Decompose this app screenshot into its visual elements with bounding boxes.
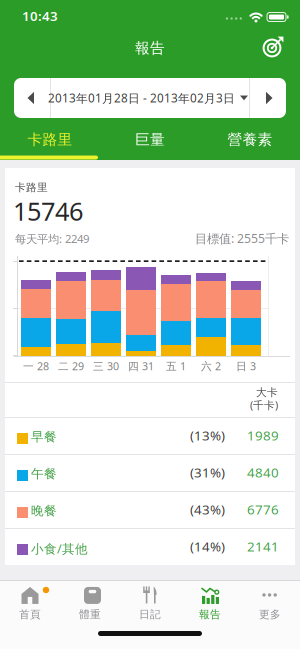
- staticText: 首頁: [19, 608, 41, 621]
- staticText: 日記: [139, 608, 161, 621]
- staticText: 1989: [247, 426, 279, 444]
- staticText: (14%): [190, 537, 225, 555]
- staticText: 卡路里: [15, 181, 48, 194]
- button[interactable]: 目標: [258, 32, 288, 62]
- staticText: 六 2: [201, 359, 221, 373]
- staticText: 報告: [199, 608, 221, 621]
- staticText: (43%): [190, 500, 225, 518]
- staticText: 更多: [259, 608, 281, 621]
- staticText: 10:43: [22, 7, 58, 25]
- button[interactable]: 報告: [182, 585, 238, 622]
- button[interactable]: 巨量: [100, 123, 200, 156]
- staticText: 體重: [79, 608, 101, 621]
- staticText: 2013年01月28日 - 2013年02月3日: [48, 90, 235, 106]
- staticText: 一 28: [23, 359, 49, 373]
- staticText: (13%): [190, 426, 225, 444]
- staticText: 卡路里: [27, 130, 72, 148]
- staticText: 15746: [13, 194, 83, 228]
- button[interactable]: 上一週: [14, 84, 50, 112]
- staticText: 五 1: [166, 359, 186, 373]
- staticText: 三 30: [93, 359, 119, 373]
- button[interactable]: 2013年01月28日 - 2013年02月3日: [42, 78, 254, 118]
- staticText: 大卡: [256, 386, 278, 399]
- staticText: 晚餐: [31, 503, 57, 519]
- staticText: 4840: [247, 463, 279, 481]
- staticText: 日 3: [236, 359, 256, 373]
- staticText: 巨量: [135, 130, 165, 148]
- button[interactable]: 日記: [122, 585, 178, 622]
- staticText: 每天平均: 2249: [15, 231, 89, 246]
- button[interactable]: 更多: [242, 585, 298, 622]
- staticText: 四 31: [128, 359, 154, 373]
- staticText: (31%): [190, 463, 225, 481]
- button[interactable]: 卡路里: [0, 123, 100, 156]
- staticText: 二 29: [58, 359, 84, 373]
- staticText: (千卡): [250, 398, 278, 412]
- button[interactable]: 營養素: [200, 123, 300, 156]
- staticText: 目標值: 2555千卡: [195, 230, 289, 247]
- staticText: 6776: [247, 500, 279, 518]
- staticText: 早餐: [31, 429, 57, 445]
- staticText: 小食/其他: [31, 540, 88, 557]
- staticText: 報告: [135, 39, 165, 57]
- staticText: 午餐: [31, 466, 57, 482]
- button[interactable]: 下一週: [250, 84, 286, 112]
- staticText: 2141: [247, 537, 279, 555]
- button[interactable]: 體重: [62, 585, 118, 622]
- staticText: 營養素: [227, 130, 272, 148]
- button[interactable]: 首頁: [2, 585, 58, 622]
